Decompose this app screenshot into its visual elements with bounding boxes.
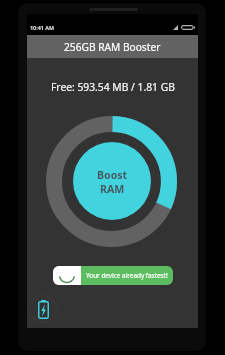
- staticText: Your device already fastest!: [86, 271, 168, 280]
- button[interactable]: Your device already fastest!: [53, 266, 173, 285]
- staticText: 10:41 AM: [30, 24, 55, 31]
- staticText: RAM: [100, 182, 125, 196]
- button[interactable]: Battery saver: [29, 295, 57, 323]
- button[interactable]: 256GB RAM Booster: [27, 35, 198, 58]
- staticText: Free: 593.54 MB / 1.81 GB: [51, 80, 175, 94]
- button[interactable]: Boost: [73, 142, 151, 220]
- staticText: 256GB RAM Booster: [64, 40, 161, 54]
- staticText: Boost: [97, 168, 128, 182]
